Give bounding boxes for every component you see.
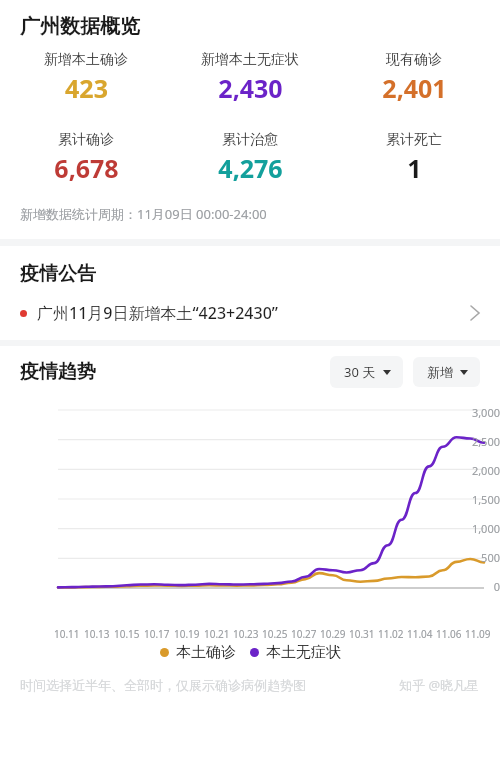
staticText: 1,500 bbox=[448, 492, 500, 507]
staticText: 新增本土无症状 bbox=[201, 51, 299, 69]
staticText: 11.04 bbox=[407, 627, 433, 641]
button[interactable]: 现有确诊 bbox=[332, 51, 496, 105]
staticText: 2,430 bbox=[218, 71, 283, 105]
staticText: 累计确诊 bbox=[58, 131, 114, 149]
staticText: 现有确诊 bbox=[386, 51, 442, 69]
staticText: 3,000 bbox=[448, 405, 500, 420]
staticText: 2,000 bbox=[448, 463, 500, 478]
other: 查看详情 bbox=[470, 305, 480, 321]
staticText: 累计治愈 bbox=[222, 131, 278, 149]
staticText: 500 bbox=[448, 550, 500, 565]
staticText: 4,276 bbox=[218, 151, 283, 185]
button[interactable]: 30 天 bbox=[330, 356, 403, 388]
staticText: 新增 bbox=[427, 364, 453, 380]
staticText: 1,000 bbox=[448, 521, 500, 536]
staticText: 10.15 bbox=[114, 627, 140, 641]
button[interactable]: 新增本土无症状 bbox=[168, 51, 332, 105]
staticText: 2,401 bbox=[382, 71, 447, 105]
staticText: 423 bbox=[65, 71, 108, 105]
button[interactable]: 广州11月9日新增本土“423+2430” bbox=[0, 302, 500, 324]
button[interactable]: 新增本土确诊 bbox=[4, 51, 168, 105]
staticText: 新增数据统计周期：11月09日 00:00-24:00 bbox=[20, 205, 267, 223]
staticText: 10.17 bbox=[144, 627, 170, 641]
staticText: 知乎 @晓凡星 bbox=[399, 676, 480, 694]
button[interactable]: 累计确诊 bbox=[4, 131, 168, 185]
staticText: 1 bbox=[407, 151, 422, 185]
staticText: 2,500 bbox=[448, 434, 500, 449]
staticText: 广州数据概览 bbox=[20, 14, 140, 39]
staticText: 新增本土确诊 bbox=[44, 51, 128, 69]
staticText: 累计死亡 bbox=[386, 131, 442, 149]
staticText: 0 bbox=[448, 579, 500, 594]
staticText: 10.29 bbox=[320, 627, 346, 641]
staticText: 疫情趋势 bbox=[20, 360, 96, 384]
staticText: 10.13 bbox=[84, 627, 110, 641]
staticText: 疫情公告 bbox=[20, 262, 96, 286]
staticText: 本土确诊 bbox=[176, 643, 236, 662]
button[interactable]: 新增 bbox=[413, 357, 480, 387]
staticText: 6,678 bbox=[54, 151, 119, 185]
button[interactable]: 累计死亡 bbox=[332, 131, 496, 185]
staticText: 广州11月9日新增本土“423+2430” bbox=[37, 302, 470, 324]
staticText: 11.09 bbox=[465, 627, 491, 641]
staticText: 10.21 bbox=[204, 627, 230, 641]
staticText: 11.02 bbox=[378, 627, 404, 641]
button[interactable]: 累计治愈 bbox=[168, 131, 332, 185]
staticText: 11.06 bbox=[436, 627, 462, 641]
staticText: 10.19 bbox=[174, 627, 200, 641]
staticText: 10.25 bbox=[262, 627, 288, 641]
staticText: 10.31 bbox=[349, 627, 375, 641]
staticText: 10.11 bbox=[54, 627, 80, 641]
staticText: 30 天 bbox=[344, 363, 376, 381]
staticText: 时间选择近半年、全部时，仅展示确诊病例趋势图 bbox=[20, 677, 306, 693]
staticText: 10.27 bbox=[291, 627, 317, 641]
staticText: 本土无症状 bbox=[266, 643, 341, 662]
staticText: 10.23 bbox=[233, 627, 259, 641]
